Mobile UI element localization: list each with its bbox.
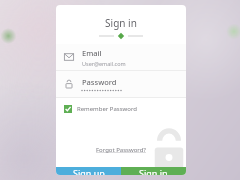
button[interactable]: Forgot Password? xyxy=(94,145,148,155)
other: Password xyxy=(64,79,74,89)
staticText: Sign in xyxy=(105,16,137,30)
staticText: User@email.com xyxy=(82,60,126,67)
staticText: Sign up xyxy=(73,167,105,175)
button[interactable]: Sign up xyxy=(56,167,121,175)
staticText: Sign in xyxy=(139,167,168,175)
other: Email xyxy=(64,52,74,62)
staticText: Password xyxy=(82,77,117,87)
staticText: Forgot Password? xyxy=(96,146,146,154)
button[interactable]: Password xyxy=(56,71,186,97)
staticText: Remember Password xyxy=(77,105,137,113)
button[interactable]: Remember Password xyxy=(56,98,186,120)
staticText: Email xyxy=(82,48,102,58)
button[interactable]: Sign in xyxy=(121,167,186,175)
button[interactable]: Email xyxy=(56,44,186,70)
